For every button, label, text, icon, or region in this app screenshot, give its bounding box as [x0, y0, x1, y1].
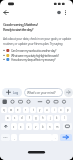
staticText: r: [25, 108, 27, 112]
button[interactable]: b: [40, 123, 46, 130]
button[interactable]: w: [8, 107, 14, 113]
staticText: Ask about your data, check in on your go…: [3, 37, 72, 41]
staticText: Ready to start the day?: [3, 27, 33, 32]
button[interactable]: x: [18, 123, 24, 130]
button[interactable]: s: [12, 115, 18, 121]
button[interactable]: m: [54, 123, 60, 130]
button[interactable]: e: [15, 107, 21, 113]
staticText: routines, or update your fitness plan. T…: [3, 42, 63, 46]
staticText: How does my sleep affect my recovery?: [11, 58, 56, 62]
button[interactable]: f: [26, 115, 32, 121]
button[interactable]: u: [44, 107, 50, 113]
staticText: o: [60, 108, 62, 112]
button[interactable]: p: [65, 107, 71, 113]
staticText: t: [33, 108, 34, 112]
staticText: c: [28, 125, 30, 129]
staticText: j: [50, 116, 51, 120]
staticText: ,: [14, 136, 15, 140]
button[interactable]: j: [47, 115, 53, 121]
staticText: m: [56, 125, 59, 129]
staticText: q: [3, 108, 5, 112]
staticText: .: [55, 136, 56, 140]
button[interactable]: [64, 88, 73, 97]
button[interactable]: [63, 123, 72, 130]
button[interactable]: How does my sleep affect my recovery?: [0, 57, 73, 62]
button[interactable]: What were my activity highlights this we…: [0, 53, 73, 58]
button[interactable]: Can I move my workout to another day?: [0, 48, 73, 53]
staticText: i: [54, 108, 55, 112]
button[interactable]: v: [33, 123, 39, 130]
button[interactable]: n: [47, 123, 53, 130]
button[interactable]: l: [61, 115, 67, 121]
staticText: l: [64, 116, 65, 120]
staticText: n: [49, 125, 51, 129]
button[interactable]: [1, 123, 10, 130]
staticText: u: [46, 108, 48, 112]
staticText: ?123: [3, 136, 8, 139]
staticText: w: [10, 108, 13, 112]
button[interactable]: [60, 134, 72, 141]
button[interactable]: d: [19, 115, 25, 121]
staticText: k: [56, 116, 58, 120]
staticText: Log: [13, 91, 18, 95]
staticText: What were my activity highlights this we…: [11, 54, 59, 58]
button[interactable]: o: [58, 107, 64, 113]
staticText: p: [67, 108, 69, 112]
button[interactable]: .: [52, 134, 58, 141]
button[interactable]: g: [33, 115, 39, 121]
staticText: b: [42, 125, 44, 129]
staticText: v: [35, 125, 37, 129]
button[interactable]: t: [30, 107, 36, 113]
button[interactable]: ,: [11, 134, 17, 141]
staticText: h: [42, 116, 44, 120]
button[interactable]: y: [37, 107, 43, 113]
staticText: a: [7, 116, 9, 120]
staticText: What's on your mind?: [27, 91, 56, 95]
staticText: f: [29, 116, 30, 120]
button[interactable]: Log: [2, 88, 22, 97]
button[interactable]: a: [5, 115, 11, 121]
staticText: s: [14, 116, 16, 120]
staticText: e: [17, 108, 19, 112]
button[interactable]: r: [23, 107, 29, 113]
staticText: Can I move my workout to another day?: [11, 49, 57, 53]
staticText: Good morning, Matthew!: [3, 22, 38, 27]
button[interactable]: k: [54, 115, 60, 121]
button[interactable]: What's on your mind?: [24, 88, 63, 97]
staticText: g: [35, 116, 37, 120]
button[interactable]: c: [26, 123, 32, 130]
staticText: d: [21, 116, 23, 120]
staticText: z: [13, 125, 15, 129]
button[interactable]: h: [40, 115, 46, 121]
button[interactable]: ?123: [1, 134, 10, 141]
button[interactable]: q: [1, 107, 7, 113]
staticText: y: [39, 108, 41, 112]
staticText: x: [20, 125, 22, 129]
button[interactable]: z: [11, 123, 17, 130]
button[interactable]: i: [51, 107, 57, 113]
